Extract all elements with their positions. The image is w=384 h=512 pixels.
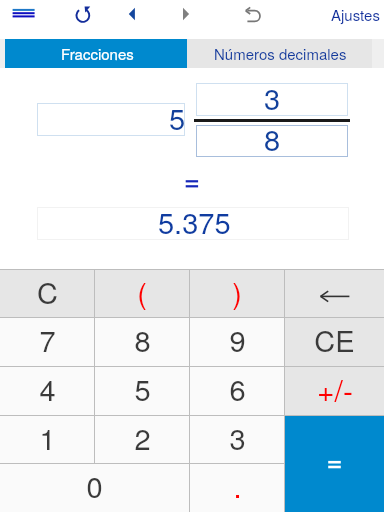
- button[interactable]: Redo: [67, 1, 99, 32]
- staticText: 4: [39, 368, 56, 410]
- button[interactable]: 2: [95, 416, 189, 463]
- button[interactable]: Fracciones: [5, 39, 187, 68]
- staticText: 0: [86, 465, 103, 507]
- staticText: 5: [169, 97, 186, 139]
- button[interactable]: Next: [174, 0, 200, 31]
- staticText: CE: [314, 319, 355, 361]
- button[interactable]: ): [190, 270, 284, 317]
- button[interactable]: 9: [190, 318, 284, 366]
- staticText: 3: [264, 77, 281, 119]
- button[interactable]: 8: [95, 318, 189, 366]
- staticText: 8: [264, 118, 281, 160]
- button[interactable]: 3: [190, 416, 284, 463]
- staticText: C: [37, 271, 58, 313]
- staticText: 1: [39, 417, 56, 459]
- staticText: Ajustes: [331, 4, 380, 25]
- button[interactable]: Previous: [120, 0, 146, 31]
- button[interactable]: +/-: [285, 367, 384, 415]
- button[interactable]: [196, 125, 348, 157]
- button[interactable]: Números decimales: [187, 39, 372, 68]
- staticText: 6: [229, 368, 246, 410]
- button[interactable]: 0: [0, 464, 189, 512]
- button[interactable]: 6: [190, 367, 284, 415]
- button[interactable]: CE: [285, 318, 384, 366]
- staticText: 3: [229, 417, 246, 459]
- button[interactable]: C: [0, 270, 94, 317]
- button[interactable]: Backspace: [285, 270, 384, 317]
- staticText: Números decimales: [214, 43, 347, 64]
- staticText: 8: [134, 319, 151, 361]
- staticText: +/-: [317, 368, 353, 411]
- button[interactable]: Equals: [285, 416, 384, 512]
- staticText: 7: [39, 319, 56, 361]
- button[interactable]: (: [95, 270, 189, 317]
- button[interactable]: Undo: [235, 1, 267, 32]
- staticText: 5: [134, 368, 151, 410]
- staticText: 5.375: [158, 201, 231, 243]
- button[interactable]: [196, 83, 348, 116]
- staticText: (: [137, 271, 147, 313]
- staticText: 2: [134, 417, 151, 459]
- button[interactable]: Ajustes: [325, 0, 384, 33]
- button[interactable]: [37, 103, 185, 136]
- button[interactable]: 1: [0, 416, 94, 463]
- staticText: Fracciones: [61, 43, 134, 64]
- button[interactable]: 4: [0, 367, 94, 415]
- button[interactable]: Menu: [4, 1, 43, 31]
- staticText: ): [232, 271, 242, 313]
- button[interactable]: .: [190, 464, 284, 512]
- button[interactable]: [37, 207, 349, 240]
- button[interactable]: 5: [95, 367, 189, 415]
- staticText: .: [233, 465, 242, 507]
- button[interactable]: 7: [0, 318, 94, 366]
- staticText: 9: [229, 319, 246, 361]
